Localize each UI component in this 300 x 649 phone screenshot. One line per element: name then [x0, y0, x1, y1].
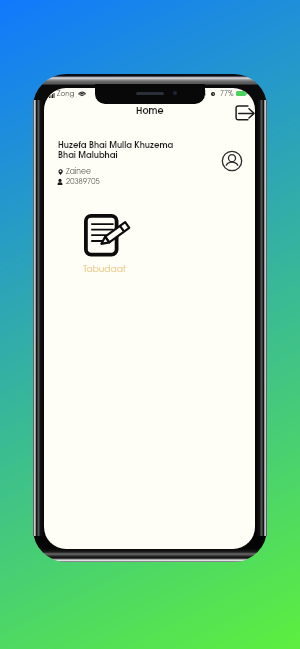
staticText: 4: [202, 91, 206, 98]
staticText: Tabudaat: [83, 265, 126, 273]
staticText: Zong: [57, 91, 75, 98]
staticText: Zainee: [66, 168, 91, 175]
staticText: Huzefa Bhai Mulla Khuzema: [58, 142, 174, 150]
button[interactable]: Tabudaat: [81, 212, 133, 272]
staticText: 77%: [220, 91, 234, 98]
staticText: 20389705: [66, 178, 100, 185]
button[interactable]: Logout: [232, 102, 255, 124]
staticText: Home: [136, 107, 164, 116]
staticText: Bhai Malubhai: [58, 152, 118, 160]
button[interactable]: Profile: [221, 150, 243, 172]
